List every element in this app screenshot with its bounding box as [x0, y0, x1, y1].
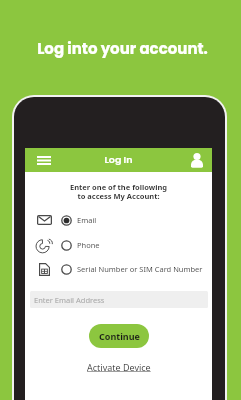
button[interactable]: Open navigation menu [32, 150, 56, 170]
staticText: Log In [25, 153, 212, 166]
staticText: Enter one of the following to access My … [25, 182, 212, 202]
staticText: Phone [77, 240, 100, 250]
button[interactable]: Enter Email Address [30, 291, 208, 308]
staticText: Activate Device [87, 361, 151, 373]
button[interactable]: Account [185, 149, 209, 171]
staticText: Enter Email Address [34, 295, 105, 305]
staticText: Serial Number or SIM Card Number [77, 264, 203, 274]
staticText: Log into your account. [2, 38, 241, 59]
staticText: Email [77, 215, 97, 225]
staticText: Continue [99, 330, 140, 342]
button[interactable]: Email [25, 208, 212, 232]
button[interactable]: Serial Number or SIM Card Number [25, 257, 212, 281]
button[interactable]: Activate Device [87, 361, 151, 373]
button[interactable]: Phone [25, 233, 212, 257]
button[interactable]: Continue [89, 324, 149, 348]
